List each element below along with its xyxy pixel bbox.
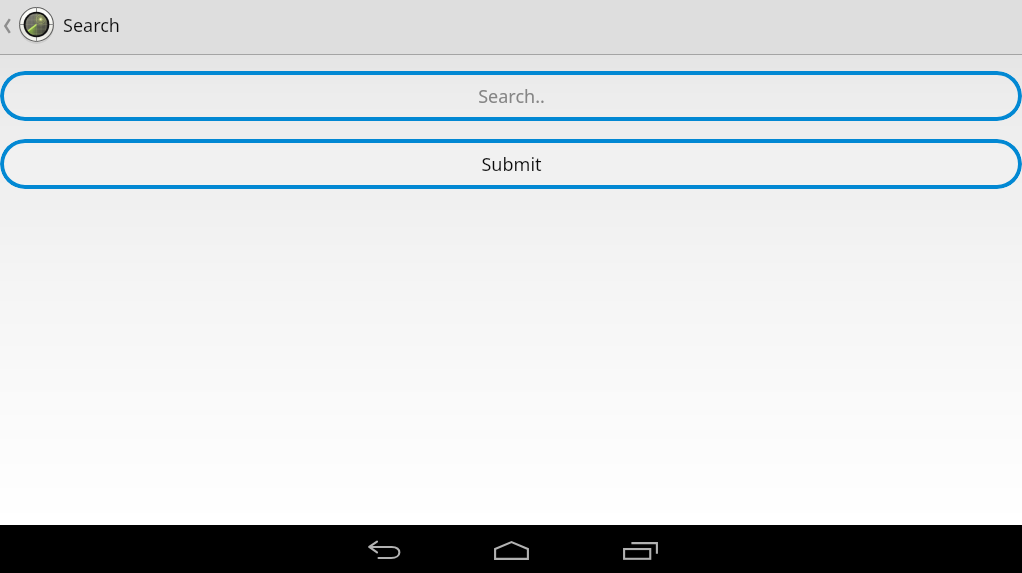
button[interactable]: Home	[494, 526, 529, 573]
button[interactable]: Back to Search	[0, 0, 1022, 49]
button[interactable]: Recents	[623, 526, 658, 573]
button[interactable]: Search..	[0, 71, 1022, 121]
staticText: Search..	[478, 84, 545, 109]
button[interactable]: Submit	[0, 139, 1022, 189]
staticText: Search	[63, 13, 120, 38]
button[interactable]: Back	[365, 526, 400, 573]
staticText: Submit	[481, 152, 542, 177]
